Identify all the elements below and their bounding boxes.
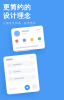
staticText: 设计理念: [3, 12, 31, 20]
staticText: 让操作更简单，效率更高: [3, 21, 36, 25]
staticText: 更简约的: [3, 3, 31, 11]
